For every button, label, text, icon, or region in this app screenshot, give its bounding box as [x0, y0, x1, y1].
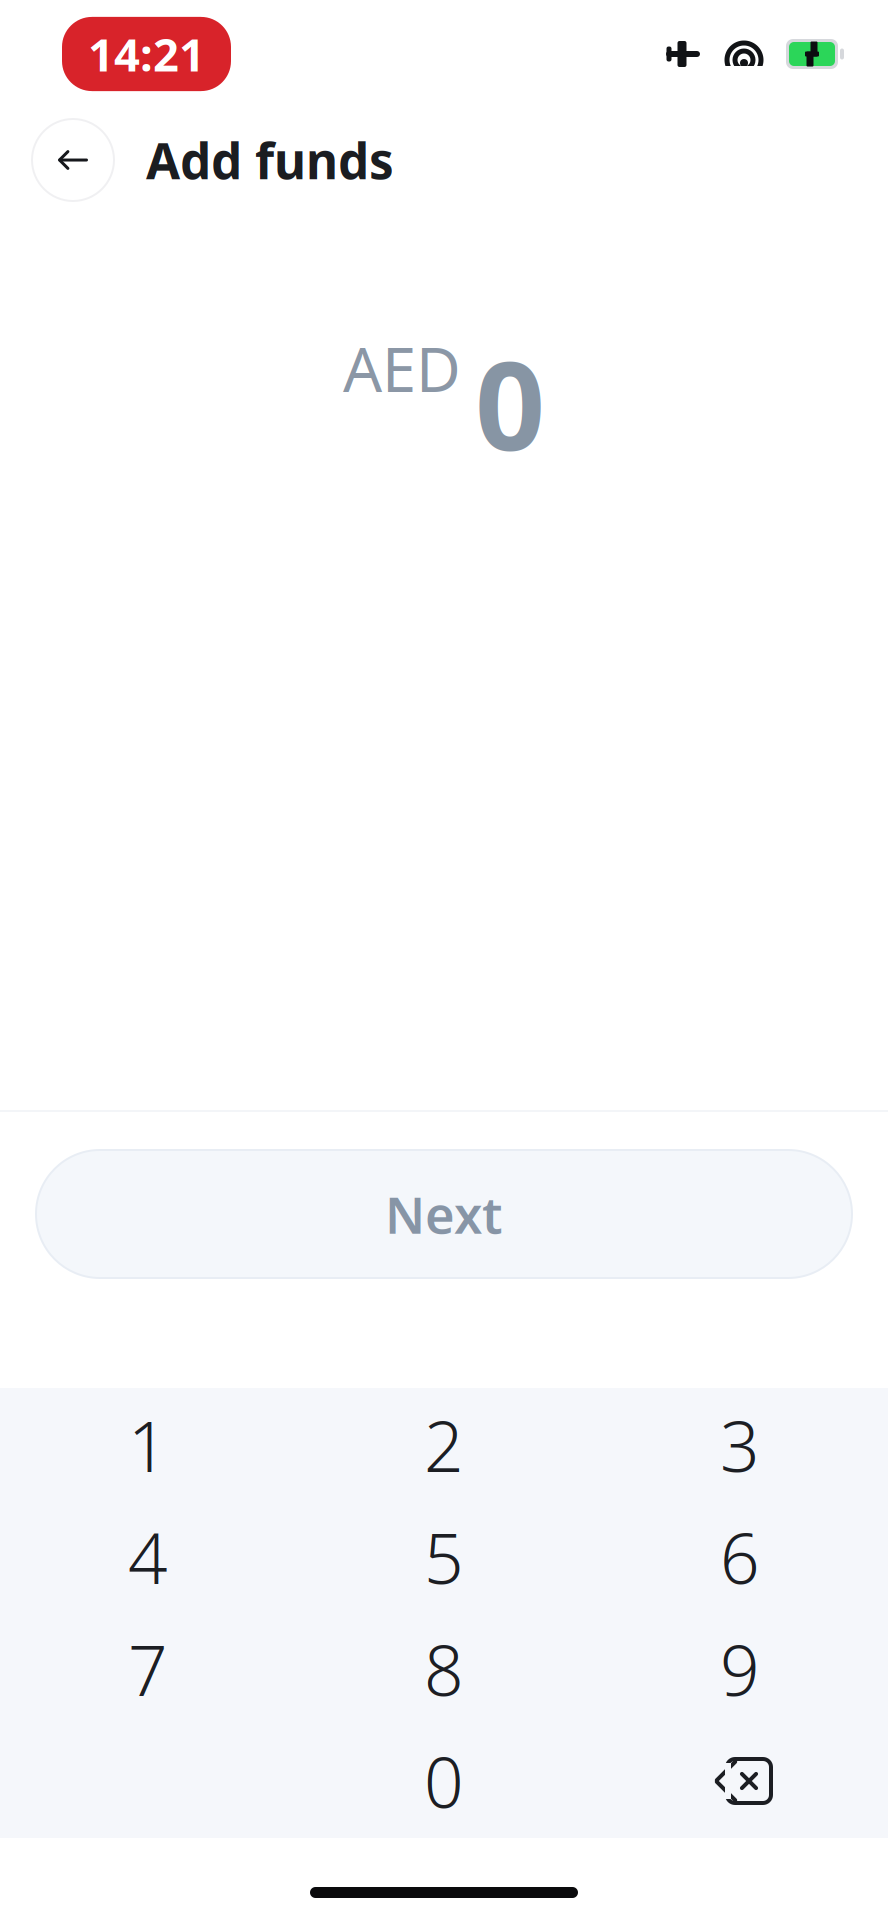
staticText: 0	[424, 1735, 464, 1827]
button[interactable]: 5	[296, 1501, 592, 1613]
staticText: Next	[385, 1180, 503, 1248]
staticText: 3	[720, 1399, 760, 1491]
button[interactable]: 1	[0, 1389, 296, 1501]
button[interactable]: 4	[0, 1501, 296, 1613]
staticText: 0	[475, 322, 545, 484]
staticText: 9	[720, 1623, 760, 1715]
button[interactable]: Next	[36, 1150, 852, 1278]
staticText: 5	[424, 1511, 464, 1603]
staticText: 6	[720, 1511, 760, 1603]
staticText: 2	[424, 1399, 464, 1491]
button[interactable]: 8	[296, 1613, 592, 1725]
staticText: 7	[128, 1623, 168, 1715]
button[interactable]: Back	[32, 119, 114, 201]
button[interactable]: 7	[0, 1613, 296, 1725]
staticText: 4	[128, 1511, 168, 1603]
staticText: 1	[128, 1399, 168, 1491]
staticText: 14:21	[88, 24, 205, 84]
button[interactable]: 2	[296, 1389, 592, 1501]
staticText: AED	[343, 328, 461, 409]
button[interactable]: 6	[592, 1501, 888, 1613]
staticText: 8	[424, 1623, 464, 1715]
button[interactable]: 0	[296, 1725, 592, 1837]
staticText: Add funds	[146, 127, 394, 193]
button[interactable]: 3	[592, 1389, 888, 1501]
button[interactable]: 9	[592, 1613, 888, 1725]
button[interactable]: Delete	[592, 1725, 888, 1837]
